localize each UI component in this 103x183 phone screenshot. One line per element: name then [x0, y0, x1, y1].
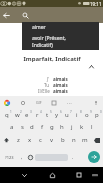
button[interactable]: Themes [19, 99, 27, 107]
button[interactable]: t [42, 109, 52, 121]
button[interactable]: n [68, 133, 79, 147]
button[interactable]: s [17, 121, 27, 133]
staticText: aimais [53, 82, 68, 88]
staticText: 0 [100, 110, 102, 114]
button[interactable]: Backspace [90, 133, 103, 147]
staticText: g [50, 123, 54, 131]
button[interactable]: avoir (Présent, Indicatif) [22, 33, 99, 50]
staticText: w [15, 111, 20, 119]
staticText: t [46, 111, 49, 119]
staticText: J' [47, 76, 50, 82]
button[interactable]: Settings [65, 98, 74, 107]
staticText: 5 [50, 110, 52, 114]
button[interactable]: l [87, 121, 97, 133]
staticText: 9 [90, 110, 92, 114]
staticText: c [39, 136, 42, 144]
staticText: Tu [44, 82, 50, 88]
button[interactable]: Il/Elle [0, 88, 103, 94]
button[interactable]: Home [44, 167, 60, 183]
staticText: , [21, 154, 23, 161]
staticText: Imparfait, Indicatif [23, 55, 81, 63]
staticText: 7 [70, 110, 72, 114]
staticText: . [72, 154, 74, 161]
button[interactable]: Enter [88, 151, 100, 163]
button[interactable]: h [57, 121, 67, 133]
button[interactable]: g [47, 121, 57, 133]
staticText: u [65, 111, 69, 119]
button[interactable]: a [6, 121, 17, 133]
staticText: a [10, 123, 14, 131]
staticText: Il/Elle [38, 88, 50, 94]
staticText: b [61, 136, 65, 144]
button[interactable]: GIF [34, 98, 43, 107]
button[interactable]: Back [16, 167, 32, 183]
staticText: 2 [20, 110, 22, 114]
button[interactable]: o [82, 109, 92, 121]
staticText: 6 [60, 110, 62, 114]
button[interactable]: aimer [22, 22, 99, 33]
button[interactable]: ?123 [0, 147, 18, 167]
staticText: GIF [36, 100, 42, 105]
button[interactable]: Recents [71, 167, 87, 183]
staticText: 1 [10, 110, 12, 114]
button[interactable]: w [12, 109, 22, 121]
staticText: j [71, 123, 73, 131]
staticText: v [50, 136, 54, 144]
staticText: s [21, 123, 24, 131]
staticText: q [5, 111, 9, 119]
button[interactable]: f [37, 121, 47, 133]
staticText: n [72, 136, 76, 144]
button[interactable]: z [12, 133, 24, 147]
button[interactable]: J' [0, 76, 103, 82]
button[interactable]: e [22, 109, 32, 121]
staticText: ?123 [5, 155, 14, 160]
button[interactable]: x [24, 133, 35, 147]
button[interactable]: Stickers [50, 99, 58, 107]
button[interactable]: Tu [0, 82, 103, 88]
staticText: aimer [32, 24, 46, 31]
staticText: 4 [40, 110, 42, 114]
button[interactable]: Search [19, 9, 32, 22]
button[interactable]: b [57, 133, 68, 147]
button[interactable]: Collapse [86, 61, 97, 72]
staticText: 8 [80, 110, 82, 114]
staticText: d [30, 123, 34, 131]
staticText: r [36, 111, 39, 119]
staticText: y [55, 111, 59, 119]
staticText: ⋯ [67, 100, 72, 106]
staticText: f [41, 123, 44, 131]
staticText: o [85, 111, 89, 119]
button[interactable]: Voice input [91, 98, 100, 107]
button[interactable]: p [92, 109, 102, 121]
button[interactable]: u [62, 109, 72, 121]
button[interactable]: Emoji [26, 147, 35, 167]
button[interactable]: q [1, 109, 12, 121]
button[interactable]: d [27, 121, 37, 133]
button[interactable]: Back [0, 9, 13, 22]
button[interactable]: r [32, 109, 42, 121]
button[interactable]: c [35, 133, 46, 147]
button[interactable]: Imparfait, Indicatif [0, 54, 103, 63]
button[interactable]: v [46, 133, 57, 147]
button[interactable]: j [67, 121, 77, 133]
button[interactable]: . [68, 147, 77, 167]
staticText: z [17, 136, 20, 144]
staticText: p [95, 111, 99, 119]
staticText: m [82, 136, 88, 144]
staticText: 3 [30, 110, 32, 114]
button[interactable]: i [72, 109, 82, 121]
button[interactable]: Shift [0, 133, 12, 147]
button[interactable]: , [18, 147, 26, 167]
staticText: aimais [53, 76, 68, 82]
staticText: 19:11 [90, 1, 102, 7]
button[interactable]: m [79, 133, 90, 147]
button[interactable]: Google [3, 99, 11, 107]
staticText: avoir (Présent, Indicatif) [32, 35, 66, 48]
button[interactable]: y [52, 109, 62, 121]
staticText: k [80, 123, 84, 131]
staticText: i [76, 111, 78, 119]
button[interactable]: k [77, 121, 87, 133]
staticText: x [28, 136, 32, 144]
button[interactable]: Hide keyboard [88, 167, 101, 183]
